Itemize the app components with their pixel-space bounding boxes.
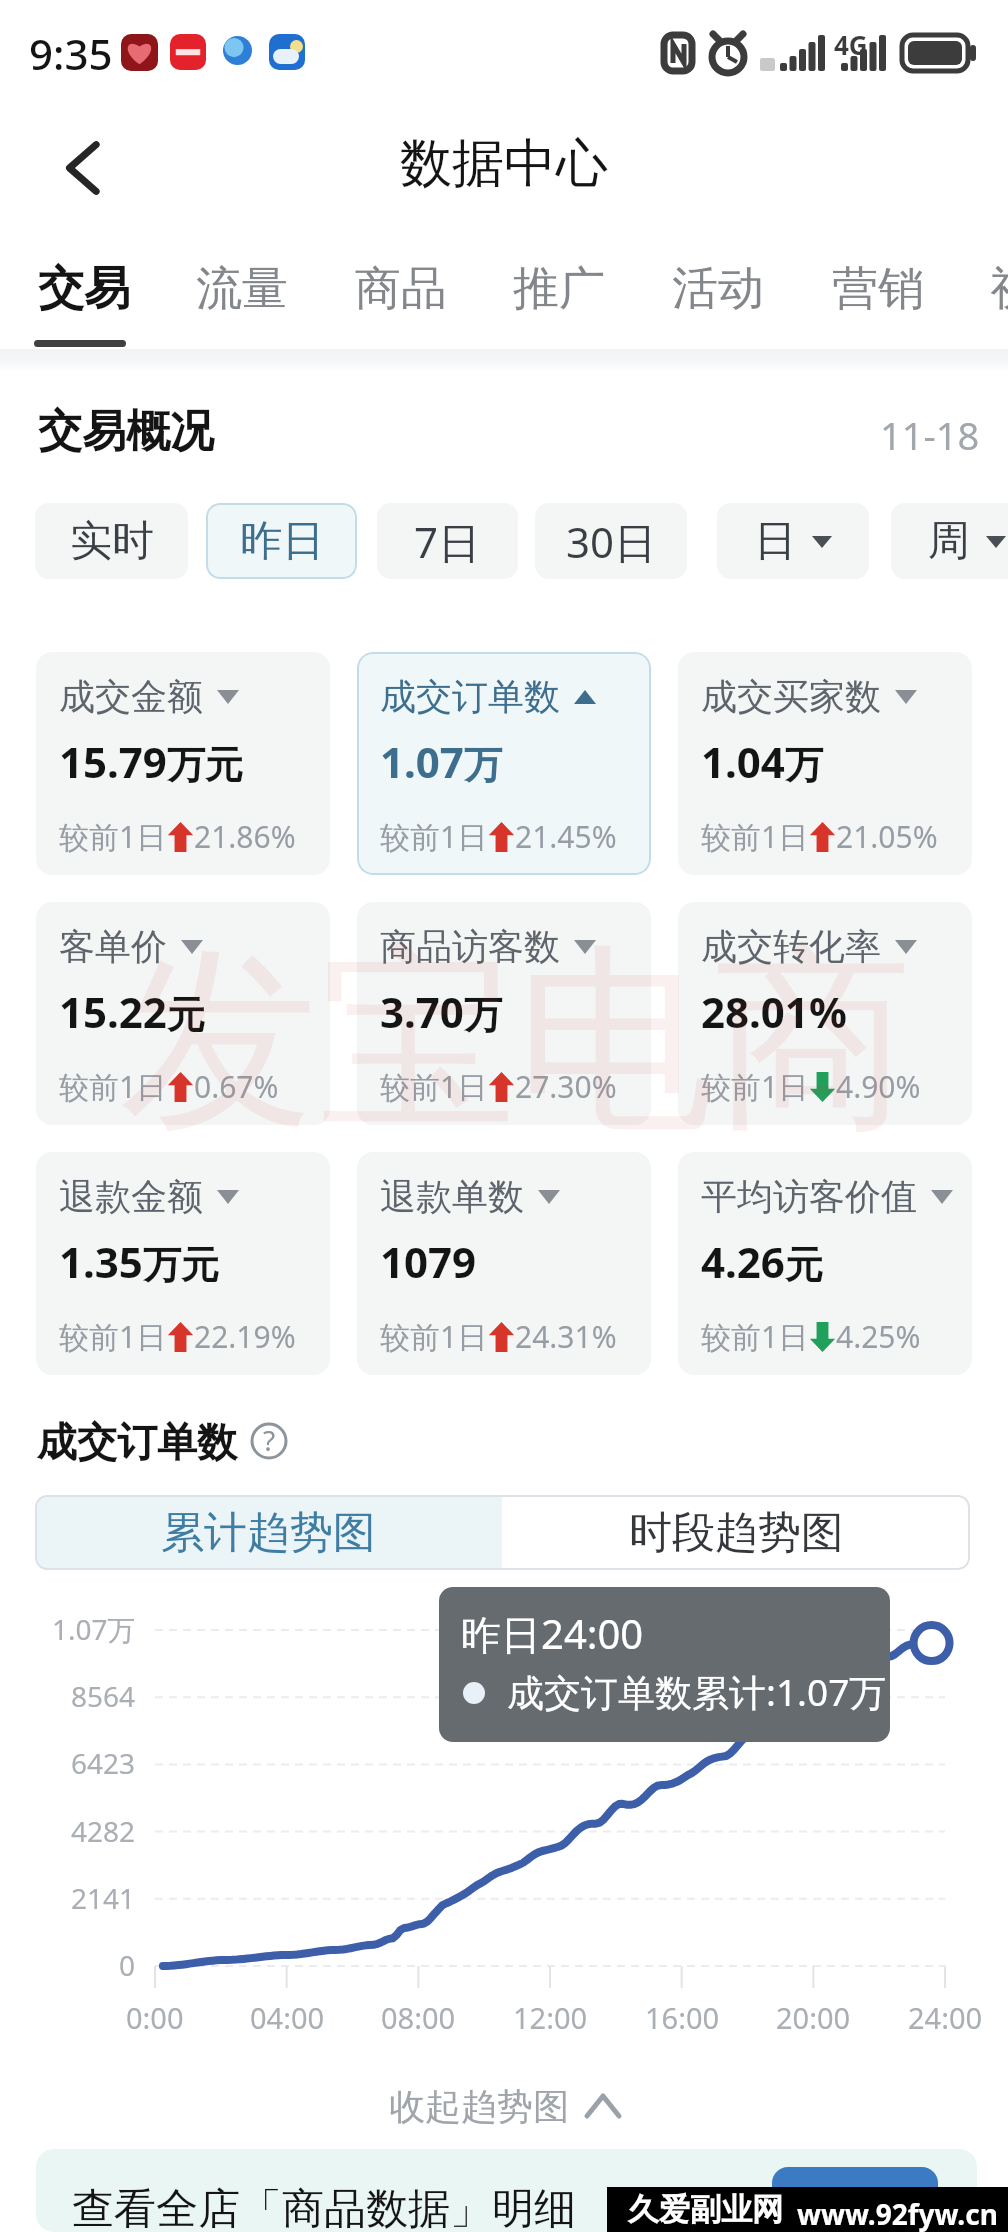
button[interactable]: 推广 xyxy=(513,260,605,352)
staticText: 30日 xyxy=(566,513,657,570)
staticText: 商品访客数 xyxy=(380,924,560,969)
staticText: 成交订单数 xyxy=(380,674,560,719)
staticText: 交易概况 xyxy=(38,404,214,459)
staticText: 2141 xyxy=(71,1879,136,1917)
staticText: 数据中心 xyxy=(400,131,608,197)
button[interactable]: 收起趋势图 xyxy=(0,2076,1008,2136)
staticText: 推广 xyxy=(513,260,605,318)
staticText: 商 xyxy=(714,917,912,1166)
staticText: 昨日 xyxy=(240,515,324,568)
button[interactable]: 30日 xyxy=(535,503,687,579)
staticText: 交易 xyxy=(38,260,130,318)
button[interactable]: 退款金额 xyxy=(36,1152,330,1375)
staticText: 电 xyxy=(516,917,714,1166)
staticText: 3.70 xyxy=(380,983,464,1040)
staticText: 较前1日 xyxy=(380,1066,488,1107)
button[interactable]: 成交转化率 xyxy=(678,902,972,1125)
button[interactable]: 成交买家数 xyxy=(678,652,972,875)
staticText: 查看全店「商品数据」明细 xyxy=(72,2183,576,2232)
button[interactable]: 查看全店「商品数据」明细 xyxy=(36,2149,977,2232)
button[interactable]: 累计趋势图 xyxy=(35,1495,502,1570)
staticText: 12:00 xyxy=(513,1998,588,2037)
staticText: 久爱副业网 xyxy=(628,2190,783,2229)
button[interactable]: 7日 xyxy=(377,503,518,579)
staticText: 实时 xyxy=(70,515,154,568)
staticText: 退款金额 xyxy=(59,1174,203,1219)
staticText: 1079 xyxy=(380,1233,477,1290)
button[interactable]: 活动 xyxy=(672,260,764,352)
staticText: 较前1日 xyxy=(701,1066,809,1107)
staticText: 1.35 xyxy=(59,1233,143,1290)
button[interactable]: 商品访客数 xyxy=(357,902,651,1125)
staticText: 较前1日 xyxy=(701,816,809,857)
staticText: 4.25% xyxy=(836,1316,921,1357)
staticText: 商品 xyxy=(355,260,447,318)
staticText: 成交转化率 xyxy=(701,924,881,969)
staticText: 24:00 xyxy=(908,1998,983,2037)
staticText: 成交金额 xyxy=(59,674,203,719)
staticText: 成交买家数 xyxy=(701,674,881,719)
staticText: 成交订单数累计:1.07万 xyxy=(507,1666,887,1717)
button[interactable]: 实时 xyxy=(35,503,188,579)
button[interactable]: 交易 xyxy=(38,260,130,352)
staticText: 21.05% xyxy=(836,816,938,857)
button[interactable]: 客单价 xyxy=(36,902,330,1125)
staticText: 15.79 xyxy=(59,733,167,790)
staticText: 元 xyxy=(167,991,205,1039)
staticText: 9:35 xyxy=(29,25,113,82)
staticText: 万 xyxy=(785,741,823,789)
button[interactable]: 流量 xyxy=(196,260,288,352)
staticText: 宝 xyxy=(318,917,516,1166)
staticText: 27.30% xyxy=(515,1066,617,1107)
button[interactable]: 退款单数 xyxy=(357,1152,651,1375)
button[interactable]: 成交金额 xyxy=(36,652,330,875)
staticText: 20:00 xyxy=(776,1998,851,2037)
button[interactable]: 视 xyxy=(990,260,1008,352)
button[interactable]: 昨日 xyxy=(206,503,357,579)
button[interactable]: Help xyxy=(249,1421,289,1461)
staticText: 6423 xyxy=(71,1744,136,1782)
staticText: 较前1日 xyxy=(380,816,488,857)
staticText: 成交订单数 xyxy=(37,1417,237,1467)
staticText: 0.67% xyxy=(194,1066,279,1107)
staticText: 较前1日 xyxy=(59,1066,167,1107)
button[interactable]: 成交订单数 xyxy=(357,652,651,875)
staticText: 11-18 xyxy=(880,409,980,461)
staticText: 流量 xyxy=(196,260,288,318)
button[interactable]: Back xyxy=(40,126,124,210)
staticText: 04:00 xyxy=(250,1998,325,2037)
staticText: 较前1日 xyxy=(701,1316,809,1357)
staticText: 1.04 xyxy=(701,733,785,790)
button[interactable]: 商品 xyxy=(355,260,447,352)
staticText: 08:00 xyxy=(381,1998,456,2037)
staticText: 客单价 xyxy=(59,924,167,969)
staticText: 元 xyxy=(785,1241,823,1289)
button[interactable]: 平均访客价值 xyxy=(678,1152,972,1375)
staticText: 平均访客价值 xyxy=(701,1174,917,1219)
staticText: 4G xyxy=(834,27,868,62)
staticText: 活动 xyxy=(672,260,764,318)
staticText: 1.07 xyxy=(380,733,464,790)
button[interactable] xyxy=(772,2167,938,2232)
staticText: 日 xyxy=(754,515,796,568)
staticText: 15.22 xyxy=(59,983,167,1040)
staticText: 21.45% xyxy=(515,816,617,857)
staticText: 收起趋势图 xyxy=(389,2084,569,2129)
staticText: 0:00 xyxy=(126,1998,184,2037)
staticText: 较前1日 xyxy=(380,1316,488,1357)
staticText: 4.90% xyxy=(836,1066,921,1107)
staticText: 8564 xyxy=(71,1677,136,1715)
staticText: 万元 xyxy=(167,741,243,789)
staticText: 1.07万 xyxy=(52,1610,136,1648)
staticText: 视 xyxy=(990,260,1008,318)
staticText: 万 xyxy=(464,991,502,1039)
staticText: www.92fyw.cn xyxy=(797,2195,998,2232)
button[interactable]: 时段趋势图 xyxy=(502,1495,970,1570)
staticText: 16:00 xyxy=(645,1998,720,2037)
button[interactable]: 营销 xyxy=(832,260,924,352)
staticText: 万 xyxy=(464,741,502,789)
staticText: 周 xyxy=(928,515,970,568)
button[interactable]: 日 xyxy=(717,503,869,579)
staticText: ? xyxy=(263,1421,276,1459)
button[interactable]: 周 xyxy=(891,503,1008,579)
